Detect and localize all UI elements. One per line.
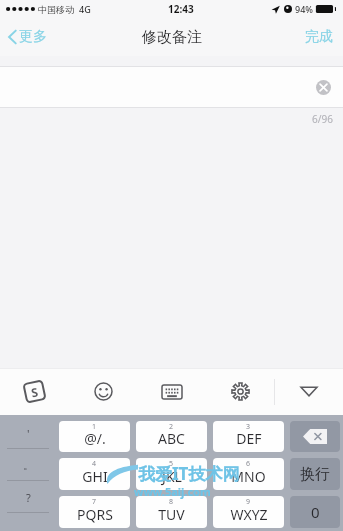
staticText: 7 <box>92 497 97 507</box>
button[interactable]: ' <box>0 418 56 449</box>
staticText: 。 <box>23 458 34 472</box>
button[interactable]: 0 <box>290 496 340 528</box>
staticText: MNO <box>231 467 266 486</box>
staticText: WXYZ <box>230 505 268 524</box>
staticText: 94% <box>295 3 313 15</box>
staticText: 中国移动 <box>38 4 74 15</box>
staticText: 12:43 <box>168 2 194 16</box>
button[interactable]: 6 <box>213 458 284 490</box>
button[interactable]: Clear text <box>316 80 331 95</box>
button[interactable]: 。 <box>0 449 56 481</box>
button[interactable]: Hide keyboard <box>275 368 343 415</box>
staticText: 9 <box>246 497 251 507</box>
staticText: @/. <box>84 429 106 448</box>
staticText: 5 <box>169 459 174 469</box>
staticText: 0 <box>311 502 320 522</box>
button[interactable]: Emoji <box>69 368 138 415</box>
staticText: ABC <box>158 429 185 448</box>
staticText: 3 <box>246 422 251 432</box>
staticText: ' <box>27 426 30 441</box>
staticText: 更多 <box>19 28 47 46</box>
button[interactable]: 更多 <box>0 18 57 56</box>
staticText: S <box>29 383 40 400</box>
staticText: 我爱IT技术网 <box>138 462 240 485</box>
button[interactable]: 9 <box>213 496 284 528</box>
button[interactable]: Backspace <box>290 421 340 452</box>
button[interactable]: ? <box>0 481 56 513</box>
staticText: ? <box>26 490 31 505</box>
staticText: 4 <box>92 459 97 469</box>
staticText: 换行 <box>300 465 330 484</box>
staticText: 2 <box>169 422 174 432</box>
button[interactable]: 8 <box>136 496 207 528</box>
staticText: JKL <box>162 467 182 486</box>
staticText: 完成 <box>305 28 333 46</box>
button[interactable]: 完成 <box>295 18 343 56</box>
button[interactable]: 4 <box>59 458 130 490</box>
staticText: 6/96 <box>312 112 333 126</box>
staticText: DEF <box>236 429 262 448</box>
staticText: www.5aij.com <box>134 484 211 499</box>
button[interactable]: 7 <box>59 496 130 528</box>
button[interactable]: 换行 <box>290 458 340 490</box>
staticText: 8 <box>169 497 174 507</box>
button[interactable]: Keyboard layout <box>138 368 206 415</box>
button[interactable]: 3 <box>213 421 284 452</box>
button[interactable]: 5 <box>136 458 207 490</box>
staticText: PQRS <box>77 505 113 524</box>
button[interactable]: Settings <box>206 368 274 415</box>
staticText: GHI <box>82 467 108 486</box>
button[interactable]: 1 <box>59 421 130 452</box>
staticText: 6 <box>246 459 251 469</box>
button[interactable]: 2 <box>136 421 207 452</box>
staticText: TUV <box>158 505 185 524</box>
staticText: 修改备注 <box>142 28 202 47</box>
staticText: 4G <box>79 3 91 15</box>
button[interactable]: Sogou input method <box>0 368 69 415</box>
staticText: 1 <box>92 422 97 432</box>
